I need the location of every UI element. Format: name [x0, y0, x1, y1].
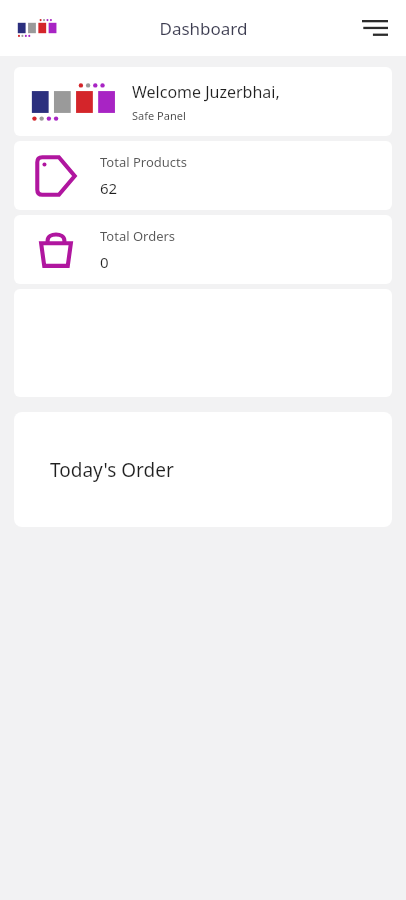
staticText: 0: [100, 252, 109, 272]
staticText: Welcome Juzerbhai,: [132, 81, 280, 103]
button[interactable]: Total Products: [14, 141, 392, 210]
button[interactable]: Menu: [352, 5, 398, 51]
button[interactable]: Total Orders: [14, 215, 392, 284]
staticText: Today's Order: [50, 457, 174, 483]
button[interactable]: Today's Order: [14, 412, 392, 527]
staticText: Safe Panel: [132, 108, 186, 123]
staticText: Total Orders: [100, 227, 176, 245]
staticText: 62: [100, 178, 118, 198]
staticText: Total Products: [100, 153, 187, 171]
button[interactable]: Welcome Juzerbhai,: [14, 67, 392, 136]
staticText: Dashboard: [159, 17, 248, 40]
button[interactable]: Safe home: [12, 14, 60, 42]
